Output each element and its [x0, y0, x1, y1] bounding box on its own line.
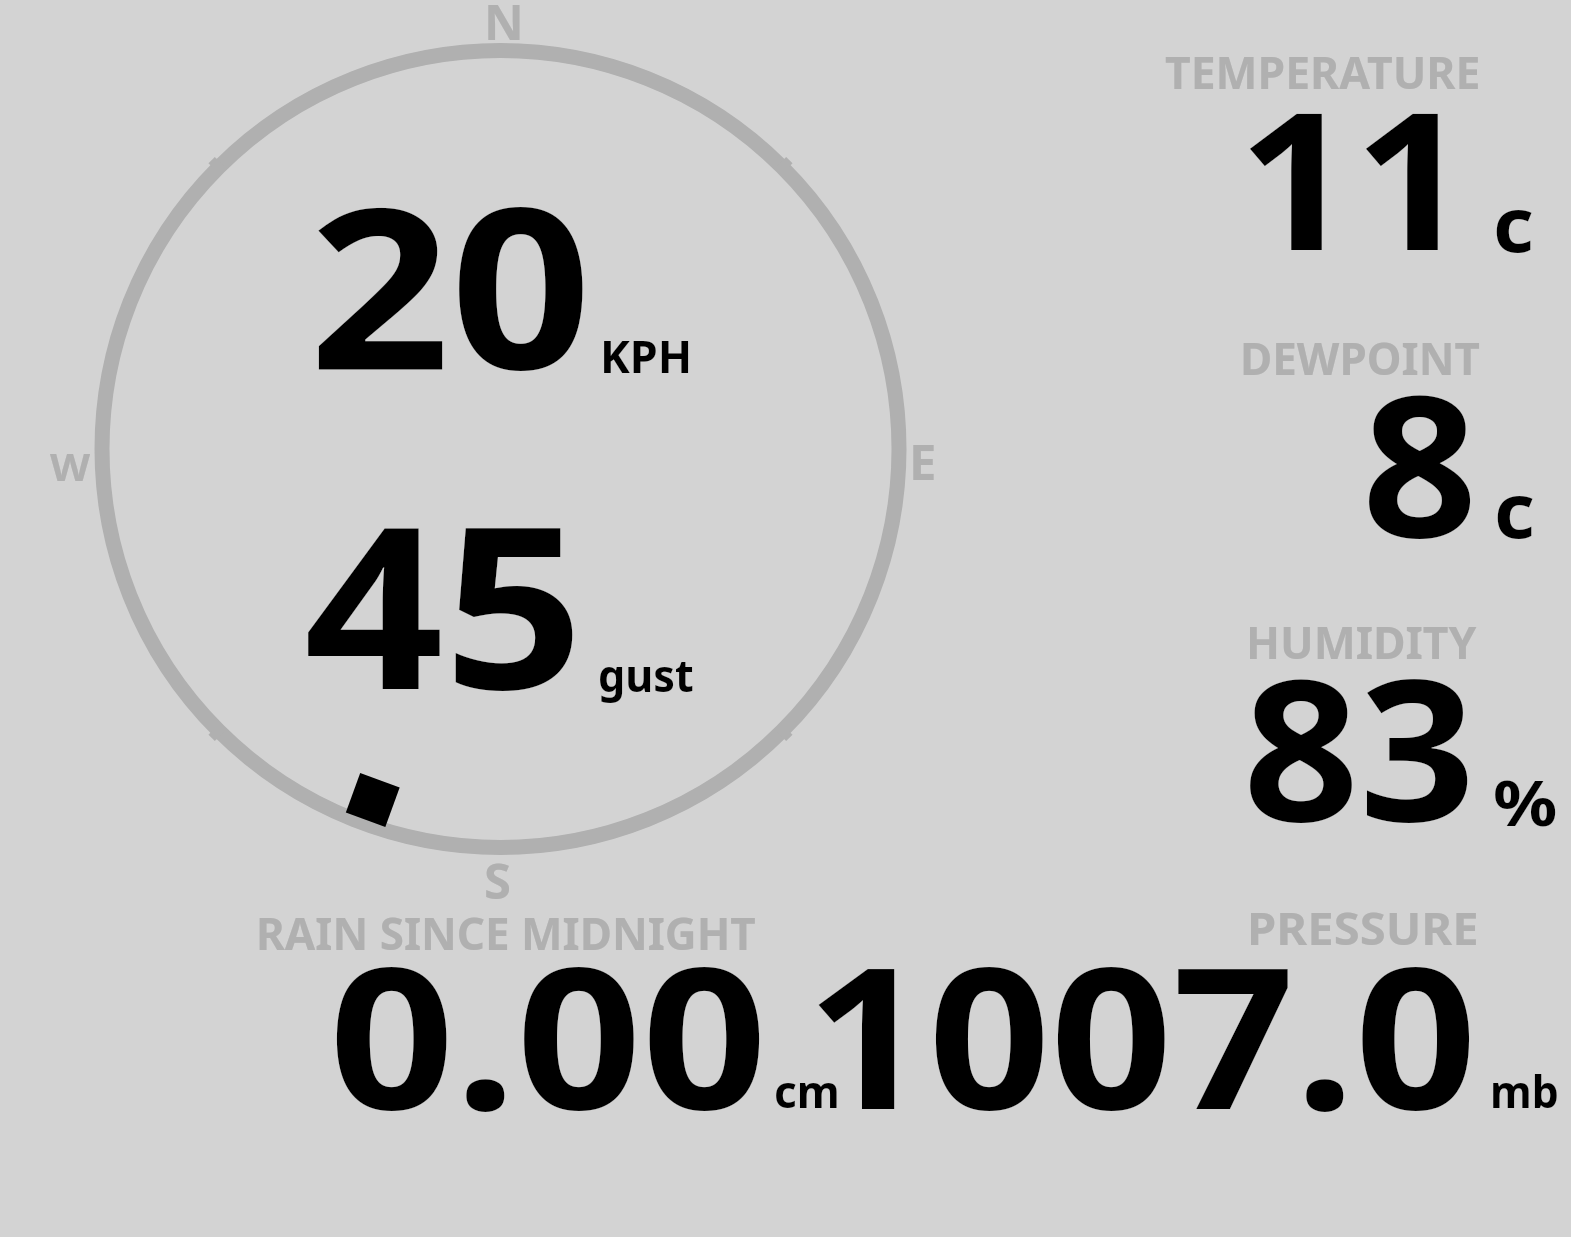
- staticText: PRESSURE: [1247, 897, 1479, 958]
- staticText: KPH: [600, 324, 693, 386]
- staticText: 1007.0: [806, 900, 1478, 1166]
- staticText: gust: [598, 643, 694, 705]
- staticText: DEWPOINT: [1240, 328, 1480, 388]
- button[interactable]: Humidity 83 percent: [1150, 615, 1565, 836]
- button[interactable]: Rain since midnight 0.00 cm: [250, 905, 845, 1120]
- staticText: 20: [309, 130, 592, 434]
- staticText: W: [50, 441, 90, 491]
- staticText: S: [484, 847, 511, 914]
- staticText: c: [1494, 458, 1535, 559]
- button[interactable]: Temperature 11 degrees C: [1150, 45, 1560, 265]
- staticText: E: [909, 428, 937, 495]
- staticText: c: [1493, 172, 1534, 273]
- staticText: %: [1493, 760, 1557, 844]
- button[interactable]: Gust 45 KPH: [290, 515, 710, 710]
- staticText: N: [484, 0, 524, 55]
- staticText: cm: [774, 1060, 841, 1121]
- staticText: mb: [1490, 1060, 1559, 1121]
- staticText: 45: [304, 448, 584, 754]
- staticText: RAIN SINCE MIDNIGHT: [256, 903, 756, 963]
- staticText: 0.00: [329, 900, 768, 1166]
- button[interactable]: Dewpoint 8 degrees C: [1150, 330, 1560, 552]
- staticText: 8: [1362, 328, 1477, 594]
- staticText: HUMIDITY: [1246, 611, 1477, 672]
- button[interactable]: Pressure 1007.0 mb: [810, 900, 1565, 1120]
- button[interactable]: Wind speed 20 KPH: [300, 190, 700, 390]
- staticText: 11: [1238, 46, 1471, 306]
- staticText: TEMPERATURE: [1165, 41, 1481, 102]
- staticText: 83: [1243, 612, 1476, 878]
